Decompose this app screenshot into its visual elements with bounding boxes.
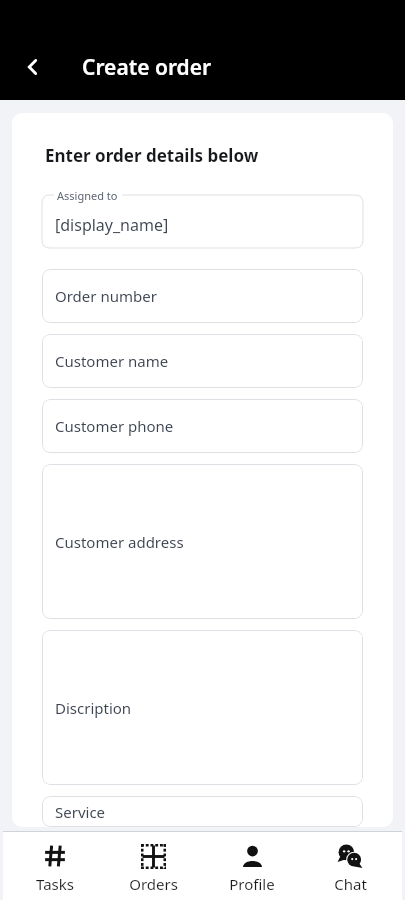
button[interactable]: Order number bbox=[42, 269, 363, 323]
button[interactable]: Tasks bbox=[9, 831, 101, 900]
button[interactable]: Customer phone bbox=[42, 399, 363, 453]
button[interactable]: Service bbox=[42, 796, 363, 827]
staticText: Tasks bbox=[36, 874, 74, 894]
staticText: Enter order details below bbox=[45, 144, 259, 167]
button[interactable]: Customer name bbox=[42, 334, 363, 388]
staticText: Discription bbox=[55, 698, 132, 718]
button[interactable]: Assigned to bbox=[42, 187, 363, 248]
staticText: Customer phone bbox=[55, 416, 174, 436]
staticText: Customer name bbox=[55, 351, 169, 371]
button[interactable]: Customer address bbox=[42, 464, 363, 619]
staticText: Create order bbox=[82, 53, 212, 82]
button[interactable]: Discription bbox=[42, 630, 363, 785]
staticText: Profile bbox=[229, 874, 275, 894]
staticText: Chat bbox=[334, 874, 367, 894]
button[interactable]: Back bbox=[12, 46, 54, 88]
staticText: Service bbox=[55, 802, 106, 822]
button[interactable]: Orders bbox=[107, 831, 199, 900]
staticText: Order number bbox=[55, 286, 157, 306]
staticText: Orders bbox=[129, 874, 178, 894]
staticText: Customer address bbox=[55, 532, 184, 552]
staticText: Assigned to bbox=[57, 188, 118, 203]
button[interactable]: Chat bbox=[304, 831, 396, 900]
button[interactable]: Profile bbox=[206, 831, 298, 900]
staticText: [display_name] bbox=[55, 214, 169, 236]
